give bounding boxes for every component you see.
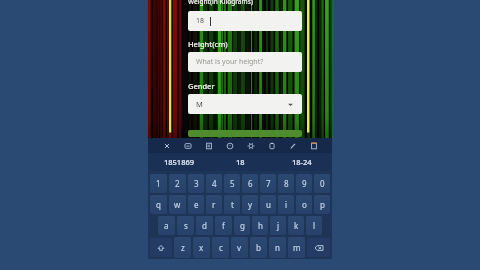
staticText: q bbox=[156, 199, 161, 210]
staticText: 1 bbox=[156, 178, 161, 189]
staticText: a bbox=[164, 220, 169, 231]
button[interactable]: s bbox=[177, 216, 194, 235]
staticText: M bbox=[196, 99, 203, 109]
button[interactable]: 18-24 bbox=[271, 153, 332, 171]
staticText: Gender bbox=[188, 81, 215, 91]
button[interactable]: h bbox=[252, 216, 268, 235]
staticText: 6 bbox=[248, 178, 253, 189]
button[interactable]: t bbox=[224, 195, 240, 214]
staticText: 1851869 bbox=[164, 157, 195, 167]
button[interactable]: o bbox=[296, 195, 312, 214]
staticText: 9 bbox=[302, 178, 307, 189]
button[interactable]: e bbox=[188, 195, 204, 214]
button[interactable]: j bbox=[270, 216, 286, 235]
staticText: 4 bbox=[212, 178, 217, 189]
staticText: l bbox=[313, 220, 316, 231]
button[interactable]: Emoji bbox=[224, 140, 235, 151]
staticText: 18-24 bbox=[292, 157, 312, 167]
button[interactable]: 5 bbox=[224, 174, 240, 193]
button[interactable]: 18 bbox=[188, 11, 302, 31]
staticText: z bbox=[181, 242, 185, 253]
staticText: f bbox=[222, 220, 225, 231]
staticText: 0 bbox=[320, 178, 325, 189]
button[interactable]: q bbox=[150, 195, 167, 214]
staticText: h bbox=[258, 220, 263, 231]
button[interactable]: What is your height? bbox=[188, 52, 302, 72]
staticText: m bbox=[293, 242, 301, 253]
button[interactable]: 7 bbox=[260, 174, 276, 193]
staticText: t bbox=[231, 199, 234, 210]
staticText: Height(cm) bbox=[188, 39, 228, 49]
button[interactable]: 8 bbox=[278, 174, 294, 193]
button[interactable]: Settings bbox=[245, 140, 256, 151]
button[interactable]: r bbox=[206, 195, 222, 214]
button[interactable]: c bbox=[212, 237, 229, 258]
button[interactable]: l bbox=[306, 216, 322, 235]
button[interactable]: Close toolbar bbox=[161, 140, 172, 151]
staticText: 2 bbox=[175, 178, 180, 189]
button[interactable]: 1 bbox=[150, 174, 167, 193]
staticText: i bbox=[285, 199, 288, 210]
button[interactable]: Clipboard bbox=[266, 140, 277, 151]
staticText: What is your height? bbox=[196, 57, 264, 67]
button[interactable]: x bbox=[193, 237, 210, 258]
staticText: d bbox=[202, 220, 207, 231]
button[interactable]: y bbox=[242, 195, 258, 214]
button[interactable]: g bbox=[234, 216, 250, 235]
button[interactable]: a bbox=[158, 216, 175, 235]
staticText: n bbox=[275, 242, 280, 253]
button[interactable]: v bbox=[231, 237, 248, 258]
staticText: w bbox=[174, 199, 181, 210]
staticText: 3 bbox=[194, 178, 199, 189]
button[interactable]: 9 bbox=[296, 174, 312, 193]
button[interactable]: 2 bbox=[169, 174, 186, 193]
button[interactable]: 18 bbox=[210, 153, 271, 171]
button[interactable]: 3 bbox=[188, 174, 204, 193]
staticText: k bbox=[294, 220, 299, 231]
button[interactable]: Stickers bbox=[182, 140, 193, 151]
staticText: 18 bbox=[236, 157, 245, 167]
staticText: b bbox=[256, 242, 261, 253]
staticText: 7 bbox=[266, 178, 271, 189]
button[interactable]: Themes bbox=[287, 140, 298, 151]
staticText: j bbox=[277, 220, 280, 231]
button[interactable]: p bbox=[314, 195, 330, 214]
button[interactable]: Shift bbox=[150, 238, 172, 257]
staticText: Weight(in Kilograms) bbox=[188, 0, 253, 6]
staticText: o bbox=[302, 199, 307, 210]
staticText: g bbox=[240, 220, 245, 231]
button[interactable]: k bbox=[288, 216, 304, 235]
staticText: x bbox=[199, 242, 204, 253]
staticText: p bbox=[320, 199, 325, 210]
staticText: e bbox=[194, 199, 199, 210]
staticText: 5 bbox=[230, 178, 235, 189]
button[interactable]: 4 bbox=[206, 174, 222, 193]
staticText: y bbox=[248, 199, 253, 210]
button[interactable]: 1851869 bbox=[148, 153, 210, 171]
button[interactable]: i bbox=[278, 195, 294, 214]
button[interactable]: u bbox=[260, 195, 276, 214]
button[interactable]: b bbox=[250, 237, 267, 258]
staticText: 18 bbox=[196, 16, 205, 26]
button[interactable]: Translate bbox=[308, 140, 319, 151]
staticText: c bbox=[219, 242, 223, 253]
button[interactable]: Backspace bbox=[307, 238, 330, 257]
button[interactable] bbox=[188, 130, 302, 137]
button[interactable]: 0 bbox=[314, 174, 330, 193]
button[interactable]: 6 bbox=[242, 174, 258, 193]
staticText: 8 bbox=[284, 178, 289, 189]
button[interactable]: f bbox=[215, 216, 232, 235]
button[interactable]: n bbox=[269, 237, 286, 258]
staticText: r bbox=[212, 199, 216, 210]
button[interactable]: GIF bbox=[203, 140, 214, 151]
button[interactable]: d bbox=[196, 216, 213, 235]
staticText: v bbox=[237, 242, 242, 253]
button[interactable]: M bbox=[188, 94, 302, 114]
staticText: s bbox=[184, 220, 188, 231]
staticText: u bbox=[266, 199, 271, 210]
button[interactable]: w bbox=[169, 195, 186, 214]
button[interactable]: m bbox=[288, 237, 305, 258]
button[interactable]: z bbox=[174, 237, 191, 258]
